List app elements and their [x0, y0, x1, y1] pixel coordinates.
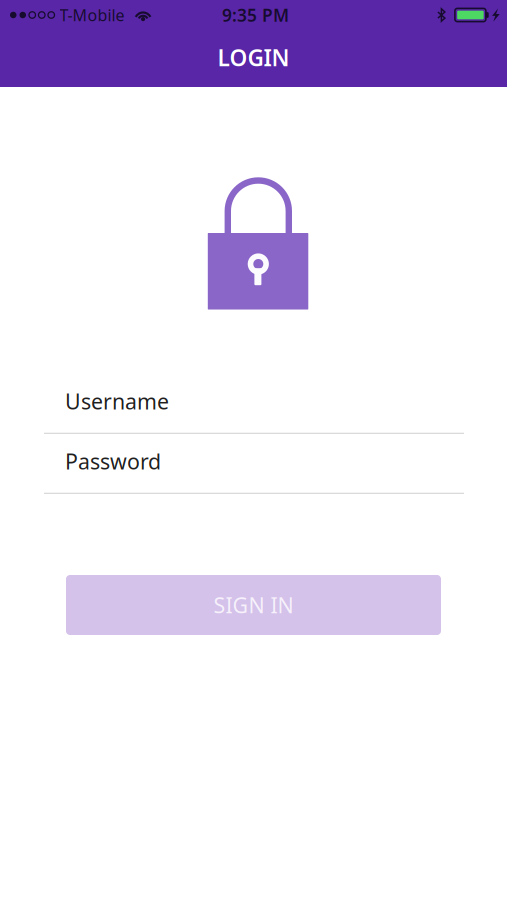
- button[interactable]: Password: [44, 447, 464, 494]
- staticText: Username: [65, 387, 169, 415]
- staticText: LOGIN: [217, 42, 289, 72]
- button[interactable]: Username: [44, 387, 464, 434]
- staticText: SIGN IN: [213, 591, 293, 619]
- staticText: Password: [65, 447, 161, 475]
- staticText: T-Mobile: [59, 4, 124, 26]
- staticText: 9:35 PM: [222, 3, 289, 26]
- button[interactable]: SIGN IN: [66, 575, 441, 635]
